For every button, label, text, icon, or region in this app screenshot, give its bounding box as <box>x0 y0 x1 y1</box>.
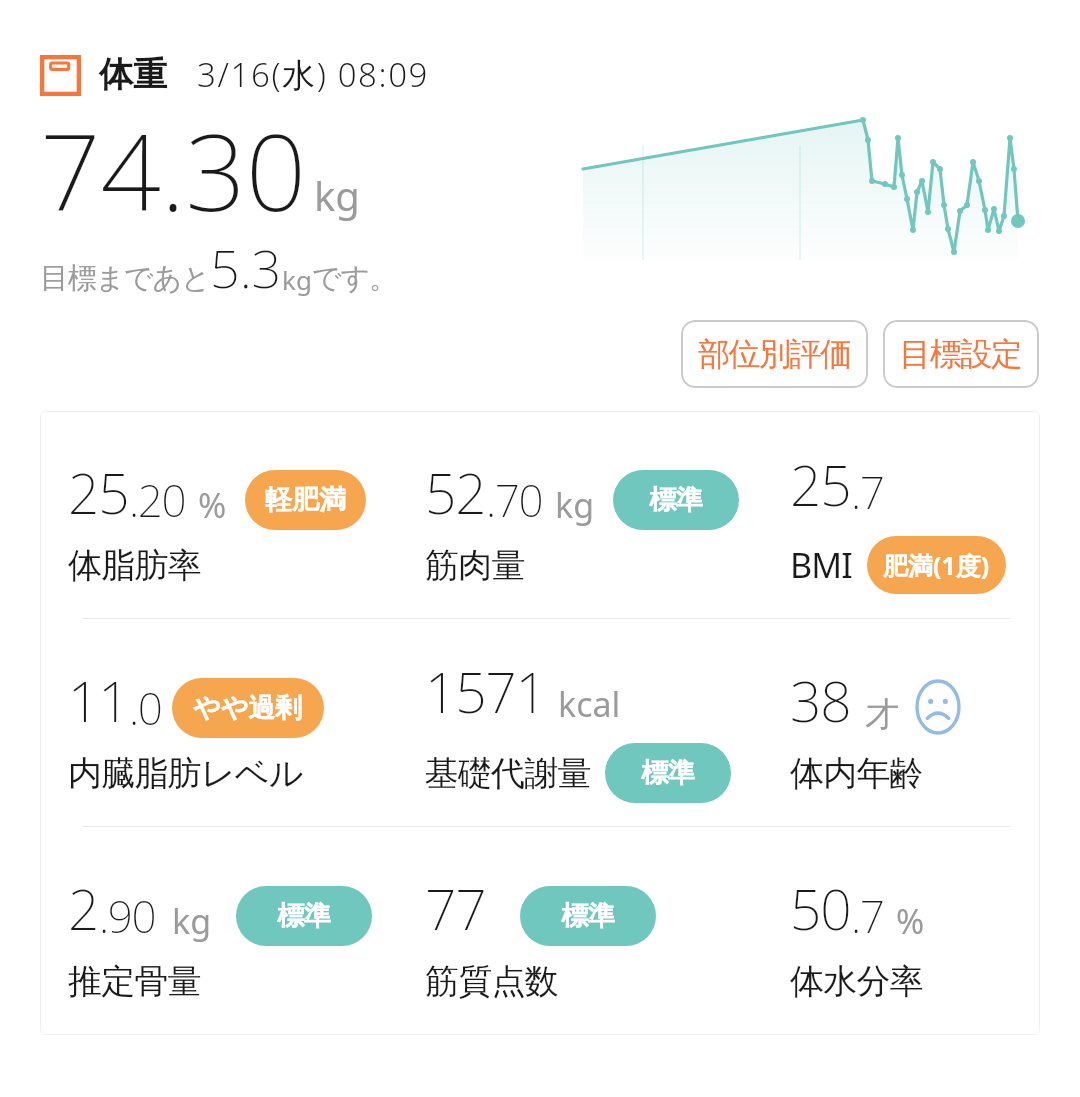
other: Body age rating: sad face <box>915 679 961 735</box>
staticText: 体水分率 <box>790 960 923 1003</box>
staticText: 11 <box>68 663 129 738</box>
button[interactable]: 標準 <box>613 470 739 530</box>
staticText: .7 <box>851 886 884 946</box>
staticText: 基礎代謝量 <box>425 752 591 795</box>
staticText: BMI <box>790 542 853 588</box>
staticText: 74.30 <box>40 98 307 242</box>
staticText: 部位別評価 <box>698 334 851 374</box>
other: Weight scale <box>40 55 81 96</box>
button[interactable]: 部位別評価 <box>681 320 868 388</box>
staticText: kcal <box>558 681 621 727</box>
staticText: 標準 <box>649 483 703 517</box>
staticText: 38 <box>790 663 851 738</box>
staticText: 目標設定 <box>900 334 1022 374</box>
button[interactable]: 標準 <box>236 886 372 946</box>
staticText: kg <box>314 168 360 222</box>
staticText: 標準 <box>277 899 331 933</box>
staticText: 体内年齢 <box>790 752 923 795</box>
staticText: .0 <box>129 678 162 738</box>
staticText: 才 <box>865 693 899 736</box>
staticText: 標準 <box>641 756 695 790</box>
staticText: 25 <box>790 447 851 522</box>
staticText: やや過剰 <box>193 691 303 725</box>
staticText: です。 <box>312 260 397 297</box>
staticText: kg <box>172 898 212 944</box>
staticText: kg <box>555 482 595 528</box>
staticText: 50 <box>790 871 851 946</box>
staticText: 軽肥満 <box>265 483 346 517</box>
button[interactable]: 標準 <box>520 886 656 946</box>
staticText: 標準 <box>561 899 615 933</box>
button[interactable]: 目標設定 <box>883 320 1039 388</box>
staticText: 25 <box>68 455 129 530</box>
button[interactable]: 軽肥満 <box>245 470 366 530</box>
staticText: 3/16(水) 08:09 <box>197 52 430 97</box>
staticText: 内臓脂肪レベル <box>68 752 303 795</box>
staticText: kg <box>282 262 312 297</box>
staticText: 77 <box>425 871 486 946</box>
staticText: % <box>198 482 227 528</box>
staticText: % <box>896 898 925 944</box>
button[interactable]: 肥満(1度) <box>867 536 1006 594</box>
staticText: 目標まであと <box>40 260 210 297</box>
button[interactable]: Weight history chart <box>575 110 1035 275</box>
staticText: 体脂肪率 <box>68 544 201 587</box>
staticText: 筋肉量 <box>425 544 525 587</box>
staticText: 52 <box>425 455 486 530</box>
staticText: .90 <box>99 886 156 946</box>
staticText: 5.3 <box>210 232 282 303</box>
button[interactable]: やや過剰 <box>172 678 324 738</box>
staticText: .20 <box>129 470 186 530</box>
staticText: .7 <box>851 462 884 522</box>
staticText: 筋質点数 <box>425 960 558 1003</box>
button[interactable]: 標準 <box>605 743 731 803</box>
staticText: 推定骨量 <box>68 960 201 1003</box>
staticText: 肥満(1度) <box>883 548 990 582</box>
staticText: 2 <box>68 871 99 946</box>
staticText: 体重 <box>99 53 167 96</box>
staticText: 1571 <box>425 654 546 729</box>
staticText: .70 <box>486 470 543 530</box>
button[interactable]: Weight scale <box>0 0 560 313</box>
